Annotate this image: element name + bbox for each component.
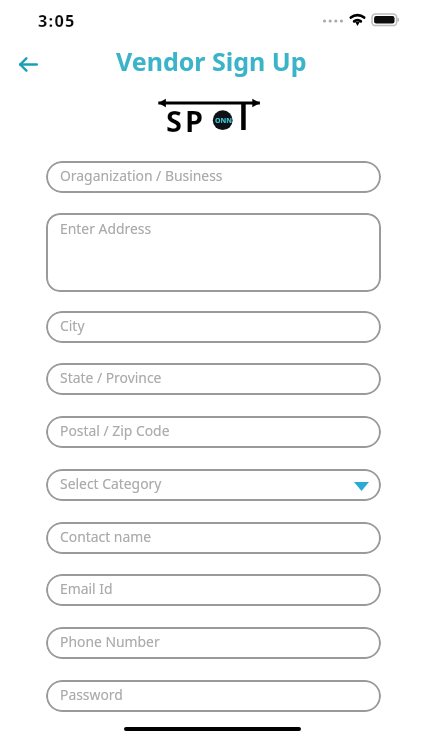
button[interactable]: Password (46, 680, 381, 712)
staticText: State / Province (60, 368, 162, 387)
staticText: P (185, 101, 204, 140)
button[interactable]: Postal / Zip Code (46, 416, 381, 448)
staticText: Oraganization / Business (60, 166, 223, 185)
button[interactable]: Phone Number (46, 627, 381, 659)
staticText: Enter Address (60, 219, 152, 238)
staticText: 3:05 (38, 10, 76, 32)
button[interactable]: State / Province (46, 363, 381, 395)
staticText: Postal / Zip Code (60, 421, 170, 440)
button[interactable]: Select Category (46, 469, 381, 501)
button[interactable]: Enter Address (46, 213, 381, 292)
staticText: Contact name (60, 527, 152, 546)
staticText: Phone Number (60, 632, 160, 651)
staticText: Vendor Sign Up (116, 44, 307, 78)
button[interactable]: Back (13, 50, 45, 78)
button[interactable]: City (46, 311, 381, 343)
staticText: ONN (215, 116, 232, 126)
button[interactable]: Contact name (46, 522, 381, 554)
staticText: Email Id (60, 579, 113, 598)
staticText: Password (60, 685, 123, 704)
staticText: Select Category (60, 474, 162, 493)
button[interactable]: Email Id (46, 574, 381, 606)
staticText: S (166, 101, 182, 140)
staticText: City (60, 316, 85, 335)
button[interactable]: Oraganization / Business (46, 161, 381, 193)
